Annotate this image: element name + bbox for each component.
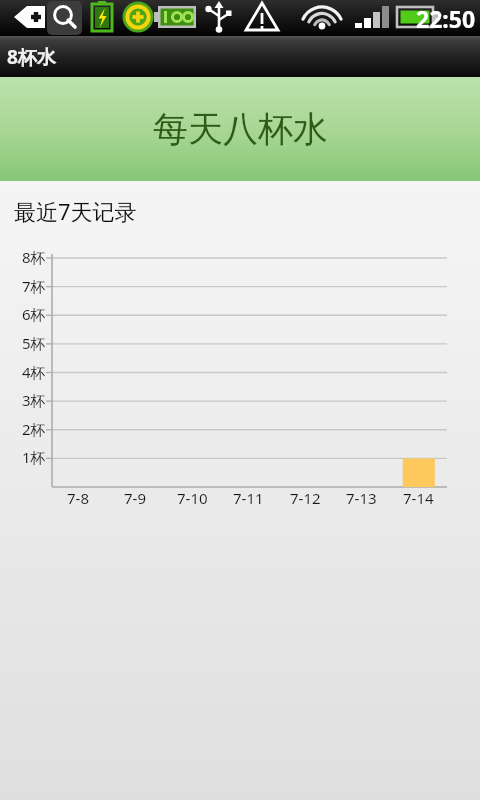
- staticText: 7-11: [233, 488, 264, 508]
- staticText: 7-9: [124, 488, 146, 508]
- staticText: 3杯: [22, 390, 46, 410]
- staticText: 7-12: [290, 488, 321, 508]
- other: 最近7天饮水记录图表: [0, 0, 480, 800]
- staticText: 1杯: [22, 447, 46, 467]
- staticText: 每天八杯水: [153, 107, 328, 151]
- staticText: 7-8: [67, 488, 89, 508]
- staticText: 4杯: [22, 362, 46, 382]
- staticText: 8杯: [22, 247, 46, 267]
- staticText: 8杯水: [7, 44, 56, 70]
- button[interactable]: 每天八杯水: [0, 77, 480, 181]
- staticText: 7-14: [403, 488, 434, 508]
- staticText: 最近7天记录: [14, 196, 137, 226]
- staticText: 2杯: [22, 419, 46, 439]
- staticText: 22:50: [416, 3, 476, 34]
- staticText: 7杯: [22, 276, 46, 296]
- staticText: 7-10: [177, 488, 208, 508]
- staticText: 6杯: [22, 304, 46, 324]
- staticText: 7-13: [346, 488, 377, 508]
- staticText: 5杯: [22, 333, 46, 353]
